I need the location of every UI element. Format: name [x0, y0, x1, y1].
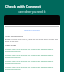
staticText: care when you need it [5, 10, 59, 14]
staticText: Check with Connect [5, 4, 41, 9]
staticText: Contact your local practice for a same d… [5, 60, 59, 64]
staticText: Based on what you told us, here are the … [5, 38, 59, 42]
staticText: Health Connect [24, 29, 40, 32]
staticText: Your symptoms [5, 34, 23, 37]
staticText: Contact your local practice for a same d… [5, 54, 59, 58]
staticText: Next steps [5, 44, 17, 47]
staticText: Contact your local practice for a same d… [5, 48, 59, 52]
staticText: Contact your local practice for a same d… [5, 66, 59, 70]
